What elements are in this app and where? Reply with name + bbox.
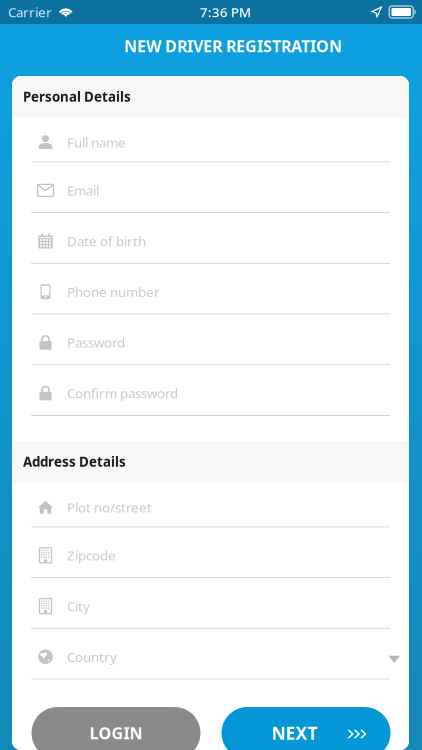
staticText: 7:36 PM: [200, 3, 251, 21]
button[interactable]: Confirm password: [12, 365, 409, 416]
button[interactable]: City: [12, 578, 409, 629]
staticText: Full name: [67, 133, 126, 151]
staticText: Carrier: [8, 3, 52, 21]
button[interactable]: LOGIN: [31, 707, 200, 750]
staticText: Country: [67, 648, 117, 666]
staticText: Password: [67, 334, 125, 351]
staticText: Date of birth: [67, 232, 146, 250]
button[interactable]: Phone number: [12, 264, 409, 315]
staticText: NEW DRIVER REGISTRATION: [124, 35, 342, 57]
staticText: City: [67, 597, 90, 615]
button[interactable]: Country: [12, 629, 409, 680]
staticText: Personal Details: [23, 88, 131, 105]
staticText: Zipcode: [67, 546, 116, 564]
button[interactable]: Full name: [12, 117, 409, 162]
button[interactable]: Plot no/street: [12, 482, 409, 527]
button[interactable]: Date of birth: [12, 213, 409, 264]
staticText: Plot no/street: [67, 498, 152, 516]
staticText: LOGIN: [89, 722, 142, 744]
button[interactable]: NEXT: [221, 707, 390, 750]
staticText: Address Details: [23, 453, 126, 470]
button[interactable]: Email: [12, 162, 409, 213]
button[interactable]: Zipcode: [12, 527, 409, 578]
button[interactable]: Password: [12, 315, 409, 365]
staticText: Email: [67, 181, 99, 199]
staticText: Confirm password: [67, 384, 178, 402]
staticText: NEXT: [271, 721, 317, 744]
staticText: Phone number: [67, 283, 160, 301]
